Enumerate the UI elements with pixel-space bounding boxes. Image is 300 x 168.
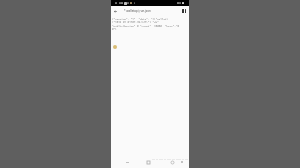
staticText: \"2024-01-01T07:38:54Z\"},"dt" bbox=[112, 21, 159, 23]
staticText: 0"} bbox=[112, 28, 117, 30]
staticText: {"version": "1", "data": "{\"wallet\ bbox=[112, 18, 169, 20]
button[interactable]: Recents bbox=[170, 160, 174, 164]
button[interactable]: Back bbox=[125, 160, 129, 164]
button[interactable]: Home bbox=[146, 160, 150, 164]
staticText: "publicVersion",0,"count", 30000, "keys"… bbox=[112, 25, 179, 27]
staticText: * walletapi_run.json bbox=[124, 9, 151, 13]
button[interactable]: Back bbox=[112, 8, 118, 14]
button[interactable]: Save bbox=[181, 8, 187, 14]
